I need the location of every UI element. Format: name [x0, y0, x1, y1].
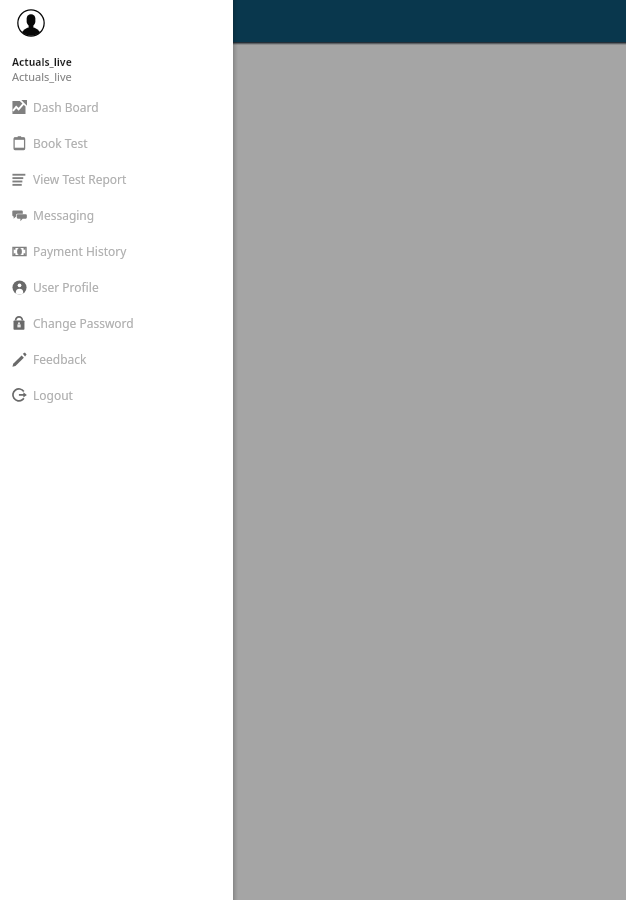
staticText: Actuals_live	[12, 69, 72, 84]
button[interactable]: User Profile	[0, 269, 233, 305]
button[interactable]: Messaging	[0, 197, 233, 233]
button[interactable]: Book Test	[0, 125, 233, 161]
button[interactable]: Dash Board	[0, 89, 233, 125]
button[interactable]: Payment History	[0, 233, 233, 269]
button[interactable]: View Test Report	[0, 161, 233, 197]
staticText: Book Test	[33, 135, 88, 151]
staticText: Payment History	[33, 243, 127, 259]
button[interactable]: Feedback	[0, 341, 233, 377]
staticText: Logout	[33, 387, 73, 403]
button[interactable]: Account avatar	[17, 9, 45, 37]
button[interactable]: Change Password	[0, 305, 233, 341]
staticText: View Test Report	[33, 171, 127, 187]
staticText: Actuals_live	[12, 55, 72, 69]
staticText: User Profile	[33, 279, 99, 295]
staticText: Messaging	[33, 207, 95, 223]
button[interactable]: Logout	[0, 377, 233, 413]
staticText: Change Password	[33, 315, 134, 331]
staticText: Feedback	[33, 351, 87, 367]
staticText: Dash Board	[33, 99, 99, 115]
